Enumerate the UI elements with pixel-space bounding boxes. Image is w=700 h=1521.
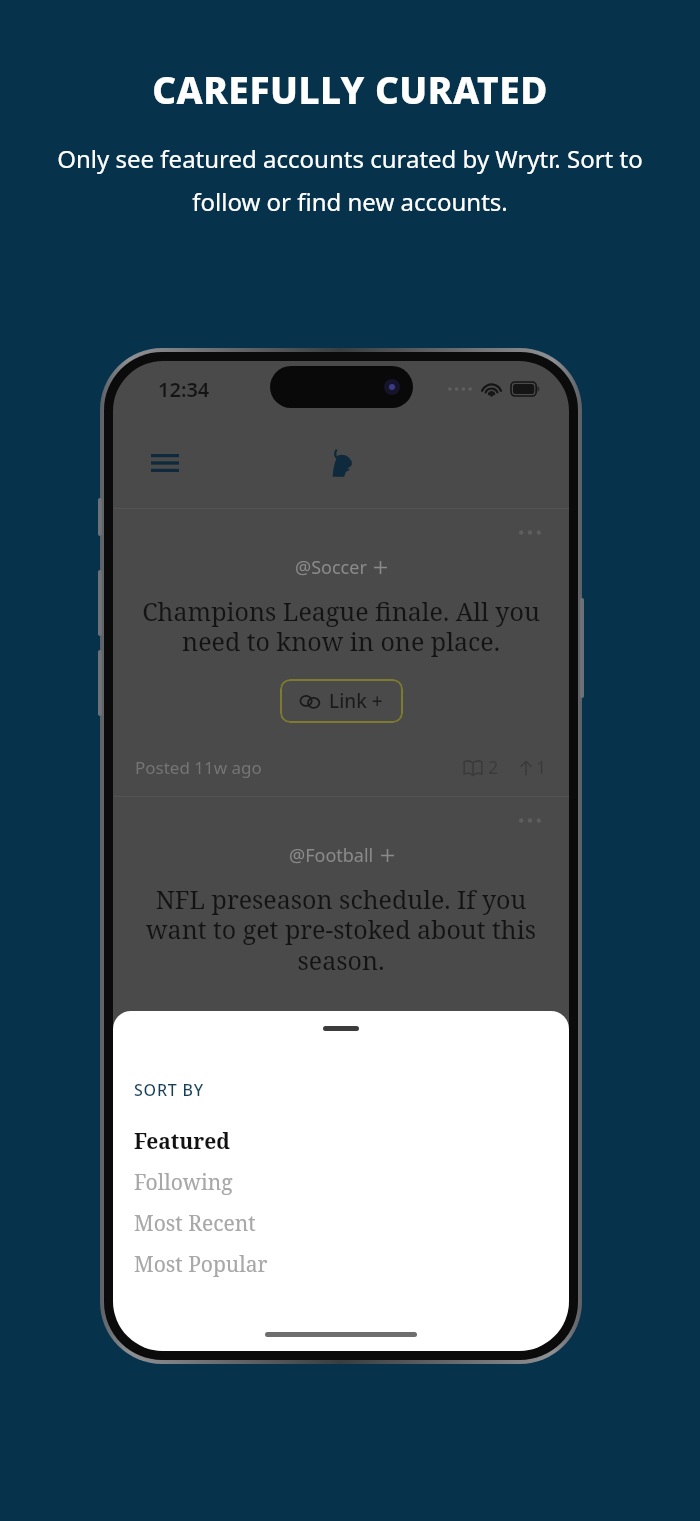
staticText: @Soccer — [295, 555, 367, 580]
button[interactable]: More options — [113, 797, 569, 998]
staticText: Only see featured accounts curated by Wr… — [30, 142, 670, 218]
staticText: Champions League finale. All you need to… — [142, 594, 540, 659]
button[interactable]: Menu — [145, 443, 185, 483]
staticText: Following — [134, 1168, 233, 1197]
button[interactable]: 2 — [463, 755, 499, 780]
staticText: CAREFULLY CURATED — [152, 64, 548, 114]
staticText: @Football — [289, 843, 374, 868]
staticText: Featured — [134, 1127, 230, 1156]
button[interactable]: More options — [513, 803, 547, 837]
staticText: Posted 11w ago — [135, 756, 262, 779]
button[interactable]: More options — [113, 509, 569, 796]
staticText: Most Recent — [134, 1209, 256, 1238]
staticText: Most Popular — [134, 1250, 268, 1279]
button[interactable]: More options — [513, 515, 547, 549]
button[interactable]: Link + — [280, 679, 403, 723]
button[interactable]: Follow @Soccer — [374, 561, 387, 574]
button[interactable]: Following — [134, 1162, 569, 1203]
staticText: NFL preseason schedule. If you want to g… — [146, 882, 536, 978]
staticText: SORT BY — [134, 1079, 205, 1101]
button[interactable]: Featured — [134, 1121, 569, 1162]
staticText: 12:34 — [158, 376, 210, 403]
button[interactable]: 1 — [519, 755, 547, 780]
button[interactable]: Wrytr home — [321, 443, 361, 483]
staticText: 1 — [536, 755, 547, 780]
staticText: Link + — [329, 688, 383, 714]
button[interactable]: Most Popular — [134, 1244, 569, 1285]
button[interactable]: Most Recent — [134, 1203, 569, 1244]
staticText: 2 — [488, 755, 499, 780]
button[interactable]: Follow @Football — [381, 849, 394, 862]
